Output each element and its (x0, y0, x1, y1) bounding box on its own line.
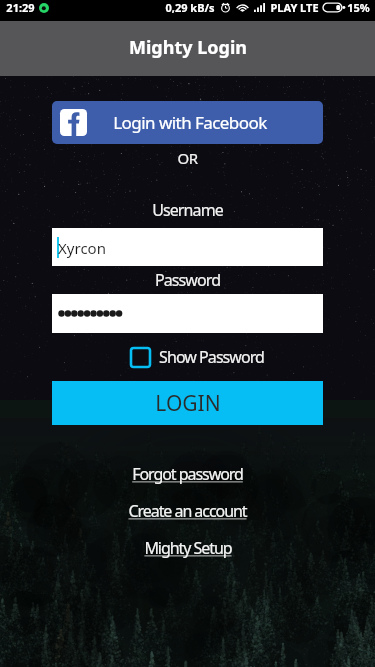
staticText: Login with Facebook (113, 111, 267, 134)
staticText: OR (0, 148, 375, 166)
button[interactable]: Create an account (122, 499, 253, 523)
button[interactable]: LOGIN (52, 381, 323, 425)
staticText: Username (0, 199, 375, 219)
button[interactable]: Mighty Setup (138, 536, 238, 560)
staticText: PLAY LTE (270, 0, 319, 15)
button[interactable]: Login with Facebook (52, 101, 323, 144)
button[interactable]: Xyrcon (52, 228, 323, 266)
staticText: Xyrcon (58, 238, 106, 258)
staticText: Mighty Setup (144, 537, 232, 559)
staticText: 0,29 kB/s (165, 0, 215, 15)
staticText: 21:29 (6, 0, 35, 15)
button[interactable] (52, 294, 323, 333)
staticText: Forgot password (132, 463, 243, 485)
button[interactable]: Show Password (129, 344, 266, 370)
staticText: Mighty Login (129, 35, 247, 60)
button[interactable]: Forgot password (126, 462, 249, 486)
staticText: Password (0, 269, 375, 289)
staticText: LOGIN (155, 389, 221, 418)
staticText: Show Password (159, 346, 264, 368)
staticText: 15% (347, 0, 370, 15)
staticText: Create an account (128, 500, 247, 522)
